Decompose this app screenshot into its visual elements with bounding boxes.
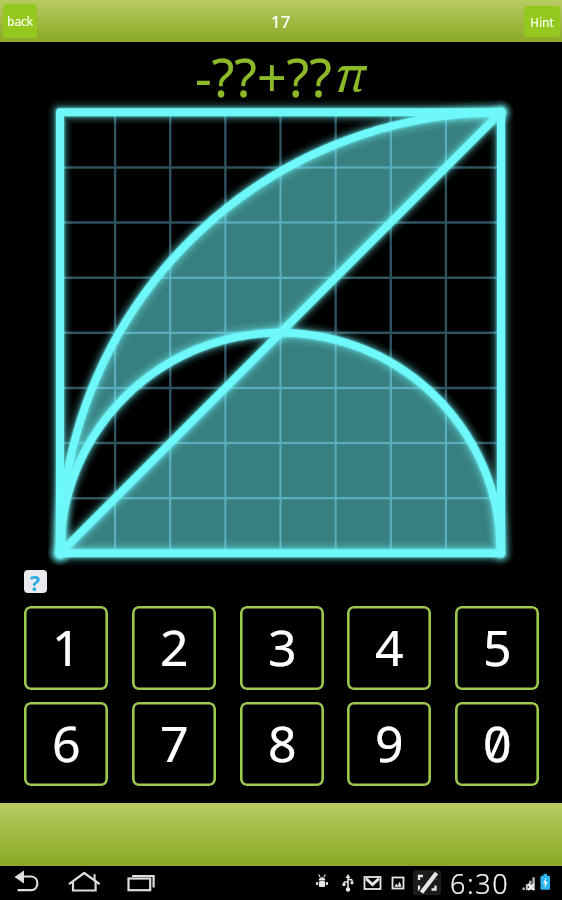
button[interactable]: 4 xyxy=(347,606,431,690)
button[interactable]: Help xyxy=(24,570,47,593)
staticText: 3 xyxy=(268,613,297,681)
button[interactable]: 6 xyxy=(24,702,108,786)
button[interactable]: 7 xyxy=(132,702,216,786)
staticText: 5 xyxy=(483,613,512,681)
button[interactable]: 9 xyxy=(347,702,431,786)
staticText: π xyxy=(335,41,367,103)
staticText: 4 xyxy=(375,613,404,681)
staticText: 17 xyxy=(271,10,291,33)
button[interactable]: back xyxy=(3,4,37,38)
button[interactable]: Home xyxy=(66,866,102,900)
staticText: 8 xyxy=(268,709,297,777)
button[interactable]: 8 xyxy=(240,702,324,786)
button[interactable]: Recent apps xyxy=(122,866,158,900)
staticText: 6:30 xyxy=(450,865,510,899)
button[interactable]: 5 xyxy=(455,606,539,690)
staticText: 1 xyxy=(52,613,81,681)
staticText: Hint xyxy=(530,14,554,30)
button[interactable]: 0 xyxy=(455,702,539,786)
button[interactable]: Back xyxy=(10,866,46,900)
button[interactable]: 3 xyxy=(240,606,324,690)
button[interactable]: 2 xyxy=(132,606,216,690)
staticText: 2 xyxy=(160,613,189,681)
staticText: 7 xyxy=(160,709,189,777)
button[interactable]: Hint xyxy=(524,6,560,37)
staticText: ? xyxy=(30,570,41,592)
staticText: 0 xyxy=(483,709,512,777)
staticText: back xyxy=(7,13,34,29)
staticText: 6 xyxy=(52,709,81,777)
staticText: -??+?? xyxy=(195,41,332,103)
staticText: 9 xyxy=(375,709,404,777)
button[interactable]: 1 xyxy=(24,606,108,690)
